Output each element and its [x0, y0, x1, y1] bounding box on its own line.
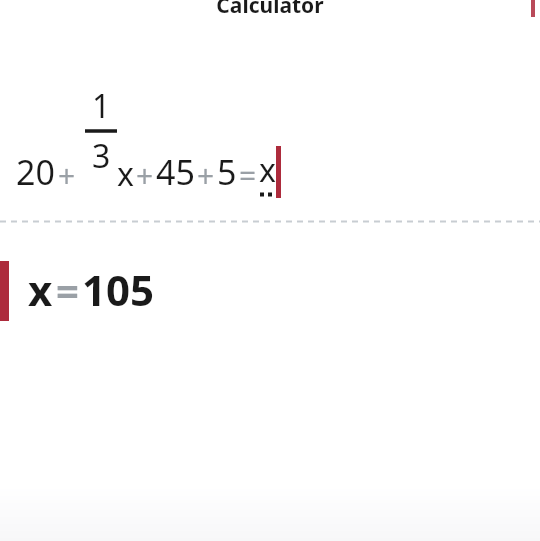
staticText: 1	[92, 84, 111, 128]
staticText: =	[56, 263, 79, 317]
staticText: 3	[92, 134, 111, 178]
staticText: x	[28, 261, 53, 318]
staticText: =	[239, 155, 257, 196]
staticText: 20	[16, 149, 55, 195]
staticText: 45	[156, 149, 195, 195]
staticText: +	[136, 155, 154, 196]
button[interactable]: x	[0, 261, 540, 323]
staticText: 5	[217, 149, 237, 195]
staticText: +	[197, 155, 215, 196]
button[interactable]: Calculator	[0, 0, 540, 22]
staticText: x	[259, 148, 276, 192]
staticText: 105	[82, 261, 155, 318]
button[interactable]: 20	[16, 84, 281, 178]
staticText: +	[58, 155, 76, 196]
staticText: Calculator	[216, 0, 324, 13]
staticText: x	[117, 152, 134, 196]
